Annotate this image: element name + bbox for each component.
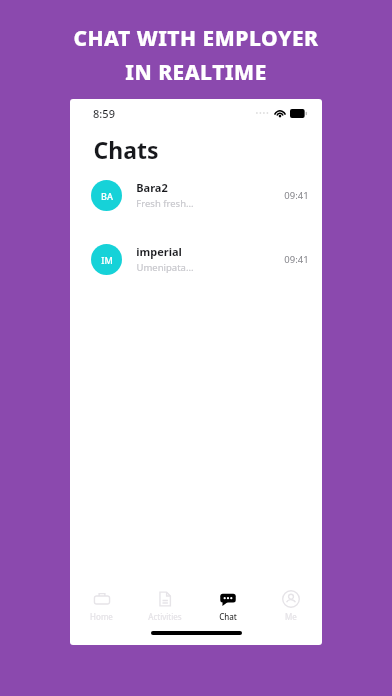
button[interactable]: IM <box>70 235 322 283</box>
staticText: Chats <box>93 134 159 165</box>
staticText: 8:59 <box>93 106 115 121</box>
button[interactable]: BA <box>70 171 322 219</box>
button[interactable]: Chat <box>196 585 259 627</box>
staticText: Home <box>90 611 113 622</box>
staticText: IN REALTIME <box>125 58 267 87</box>
staticText: Me <box>285 611 297 622</box>
staticText: Activities <box>148 611 182 622</box>
staticText: BA <box>101 190 113 202</box>
staticText: Fresh fresh... <box>136 197 194 210</box>
staticText: Bara2 <box>136 180 168 195</box>
staticText: IM <box>101 254 113 266</box>
staticText: CHAT WITH EMPLOYER <box>73 24 319 53</box>
button[interactable]: Activities <box>133 585 196 627</box>
staticText: Umenipata... <box>136 261 194 274</box>
button[interactable]: Me <box>259 585 322 627</box>
staticText: Chat <box>219 611 237 622</box>
staticText: 09:41 <box>284 189 309 202</box>
staticText: imperial <box>136 244 182 259</box>
button[interactable]: Home <box>70 585 133 627</box>
staticText: 09:41 <box>284 253 309 266</box>
